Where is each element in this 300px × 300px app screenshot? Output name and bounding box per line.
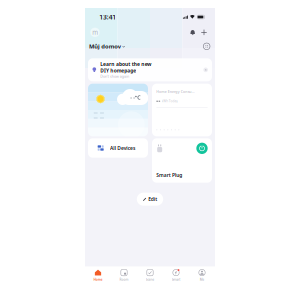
button[interactable]: - -°C — [0, 0, 144, 109]
button[interactable]: Smart Plug — [156, 115, 300, 248]
button[interactable]: Home Energy Consu… — [156, 0, 300, 109]
staticText: kWh Today — [185, 0, 234, 10]
staticText: All Devices — [30, 134, 106, 154]
button[interactable]: Edit — [110, 278, 189, 300]
button[interactable]: All Devices — [0, 115, 144, 173]
staticText: Smart Plug — [169, 215, 247, 235]
